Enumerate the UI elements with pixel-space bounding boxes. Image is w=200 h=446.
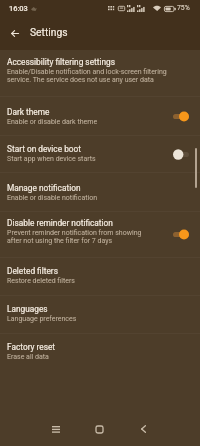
button[interactable]: Start on device boot — [0, 136, 200, 172]
button[interactable]: Factory reset — [0, 334, 200, 371]
button[interactable]: Navigate up — [2, 20, 28, 46]
button[interactable]: Manage notification — [0, 173, 200, 211]
staticText: 75% — [177, 4, 190, 12]
staticText: Disable reminder notification — [7, 218, 113, 228]
staticText: Erase all data — [7, 353, 49, 361]
staticText: Dark theme — [7, 107, 50, 117]
button[interactable]: Deleted filters — [0, 258, 200, 295]
staticText: 16:03 — [9, 4, 28, 13]
staticText: Enable or disable notification — [7, 194, 98, 202]
staticText: Start app when device starts — [7, 155, 96, 163]
staticText: Language preferences — [7, 315, 77, 323]
button[interactable]: Accessibility filtering settings — [0, 51, 200, 96]
staticText: Start on device boot — [7, 144, 82, 154]
staticText: Prevent reminder notification from showi… — [7, 229, 150, 244]
staticText: Accessibility filtering settings — [7, 57, 115, 67]
button[interactable]: Recent apps — [44, 417, 68, 441]
staticText: Enable/Disable notification and lock-scr… — [7, 68, 174, 83]
button[interactable]: Home — [87, 417, 111, 441]
button[interactable]: Back — [131, 417, 155, 441]
staticText: Enable or disable dark theme — [7, 118, 98, 126]
staticText: Manage notification — [7, 183, 81, 193]
staticText: Deleted filters — [7, 266, 58, 276]
staticText: Languages — [7, 304, 48, 314]
button[interactable]: Languages — [0, 296, 200, 333]
staticText: Factory reset — [7, 342, 56, 352]
button[interactable]: Disable reminder notification — [0, 212, 200, 257]
button[interactable]: Dark theme — [0, 97, 200, 135]
staticText: Restore deleted filters — [7, 277, 75, 285]
staticText: Settings — [30, 26, 68, 38]
